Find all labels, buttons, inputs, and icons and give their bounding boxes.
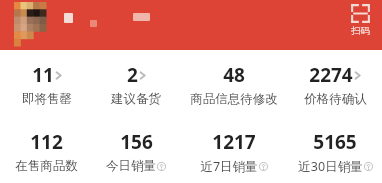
staticText: 2	[127, 62, 138, 88]
staticText: 11	[32, 62, 54, 88]
staticText: 今日销量	[106, 158, 156, 174]
staticText: 近7日销量	[200, 158, 258, 175]
button[interactable]: 11	[0, 61, 93, 108]
staticText: 2274	[309, 62, 353, 88]
staticText: 近30日销量	[298, 158, 363, 175]
staticText: 156	[120, 129, 153, 155]
staticText: 在售商品数	[15, 158, 78, 174]
button[interactable]: 2274	[288, 61, 382, 108]
staticText: 扫码	[351, 25, 370, 37]
button[interactable]: 1217	[179, 128, 288, 176]
button[interactable]: 2	[93, 61, 179, 108]
button[interactable]: 156	[93, 128, 179, 175]
button[interactable]: 扫码	[347, 3, 374, 38]
staticText: 48	[223, 62, 245, 88]
staticText: 商品信息待修改	[190, 91, 278, 107]
staticText: 5165	[313, 129, 357, 155]
button[interactable]: 48	[179, 61, 288, 108]
button[interactable]: 112	[0, 128, 93, 175]
staticText: 1217	[212, 129, 256, 155]
staticText: 价格待确认	[304, 91, 367, 107]
button[interactable]: 5165	[288, 128, 382, 176]
staticText: 112	[30, 129, 63, 155]
staticText: 即将售罄	[22, 91, 72, 107]
staticText: 建议备货	[111, 91, 161, 107]
